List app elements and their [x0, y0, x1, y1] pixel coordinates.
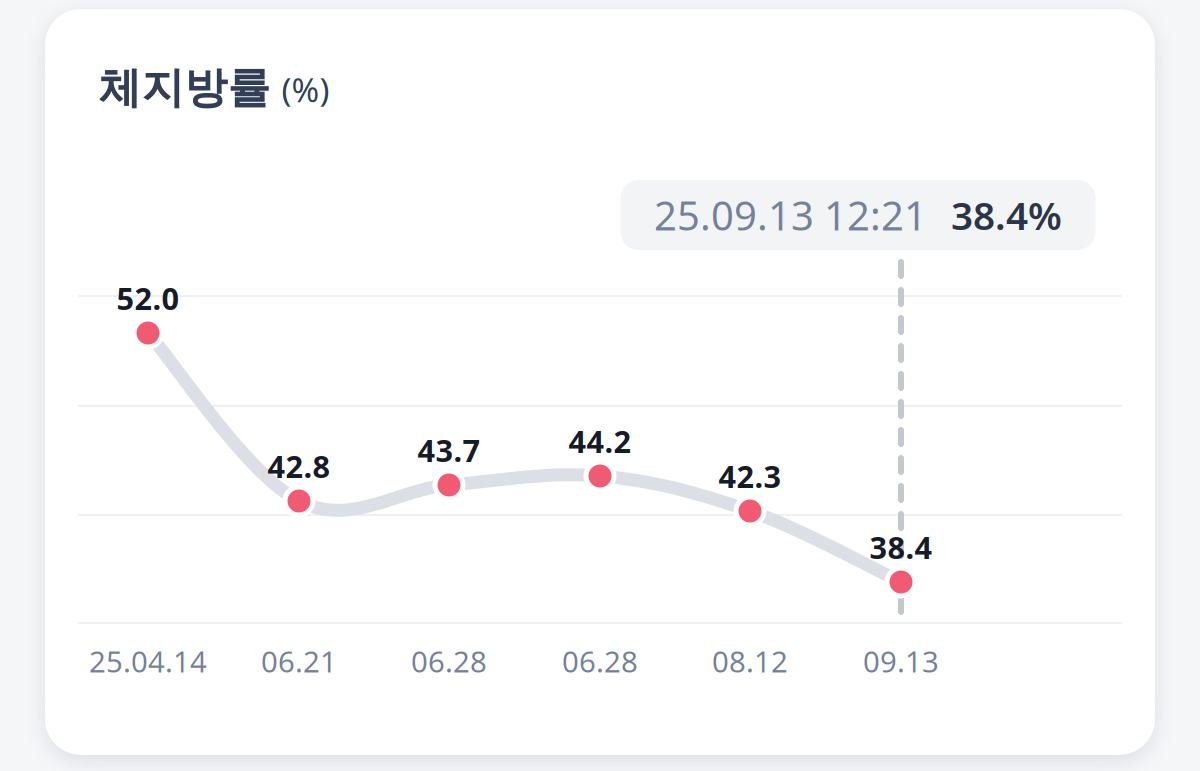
button[interactable]: 25.04.14, 52.0 퍼센트 — [98, 284, 198, 354]
button[interactable]: 06.28, 43.7 퍼센트 — [399, 436, 499, 506]
staticText: 52.0 — [116, 278, 179, 318]
staticText: 09.13 — [863, 641, 939, 680]
staticText: 43.7 — [417, 430, 480, 470]
staticText: 체지방률 — [98, 62, 270, 114]
staticText: 38.4 — [869, 527, 932, 567]
staticText: 06.28 — [411, 641, 487, 680]
staticText: 42.8 — [267, 446, 330, 486]
staticText: 25.04.14 — [89, 641, 207, 680]
staticText: 06.21 — [261, 641, 337, 680]
staticText: 06.28 — [562, 641, 638, 680]
button[interactable]: 09.13, 38.4 퍼센트 — [851, 533, 951, 603]
button[interactable]: 08.12, 42.3 퍼센트 — [700, 462, 800, 532]
button[interactable]: 06.21, 42.8 퍼센트 — [249, 452, 349, 522]
staticText: 38.4% — [951, 189, 1062, 241]
button[interactable]: 06.28, 44.2 퍼센트 — [550, 427, 650, 497]
staticText: 42.3 — [718, 456, 781, 496]
staticText: 44.2 — [568, 421, 631, 461]
staticText: 25.09.13 12:21 — [654, 188, 927, 241]
button[interactable]: 25.09.13 12:21 — [620, 180, 1095, 250]
staticText: 08.12 — [712, 641, 788, 680]
staticText: (%) — [281, 67, 329, 111]
